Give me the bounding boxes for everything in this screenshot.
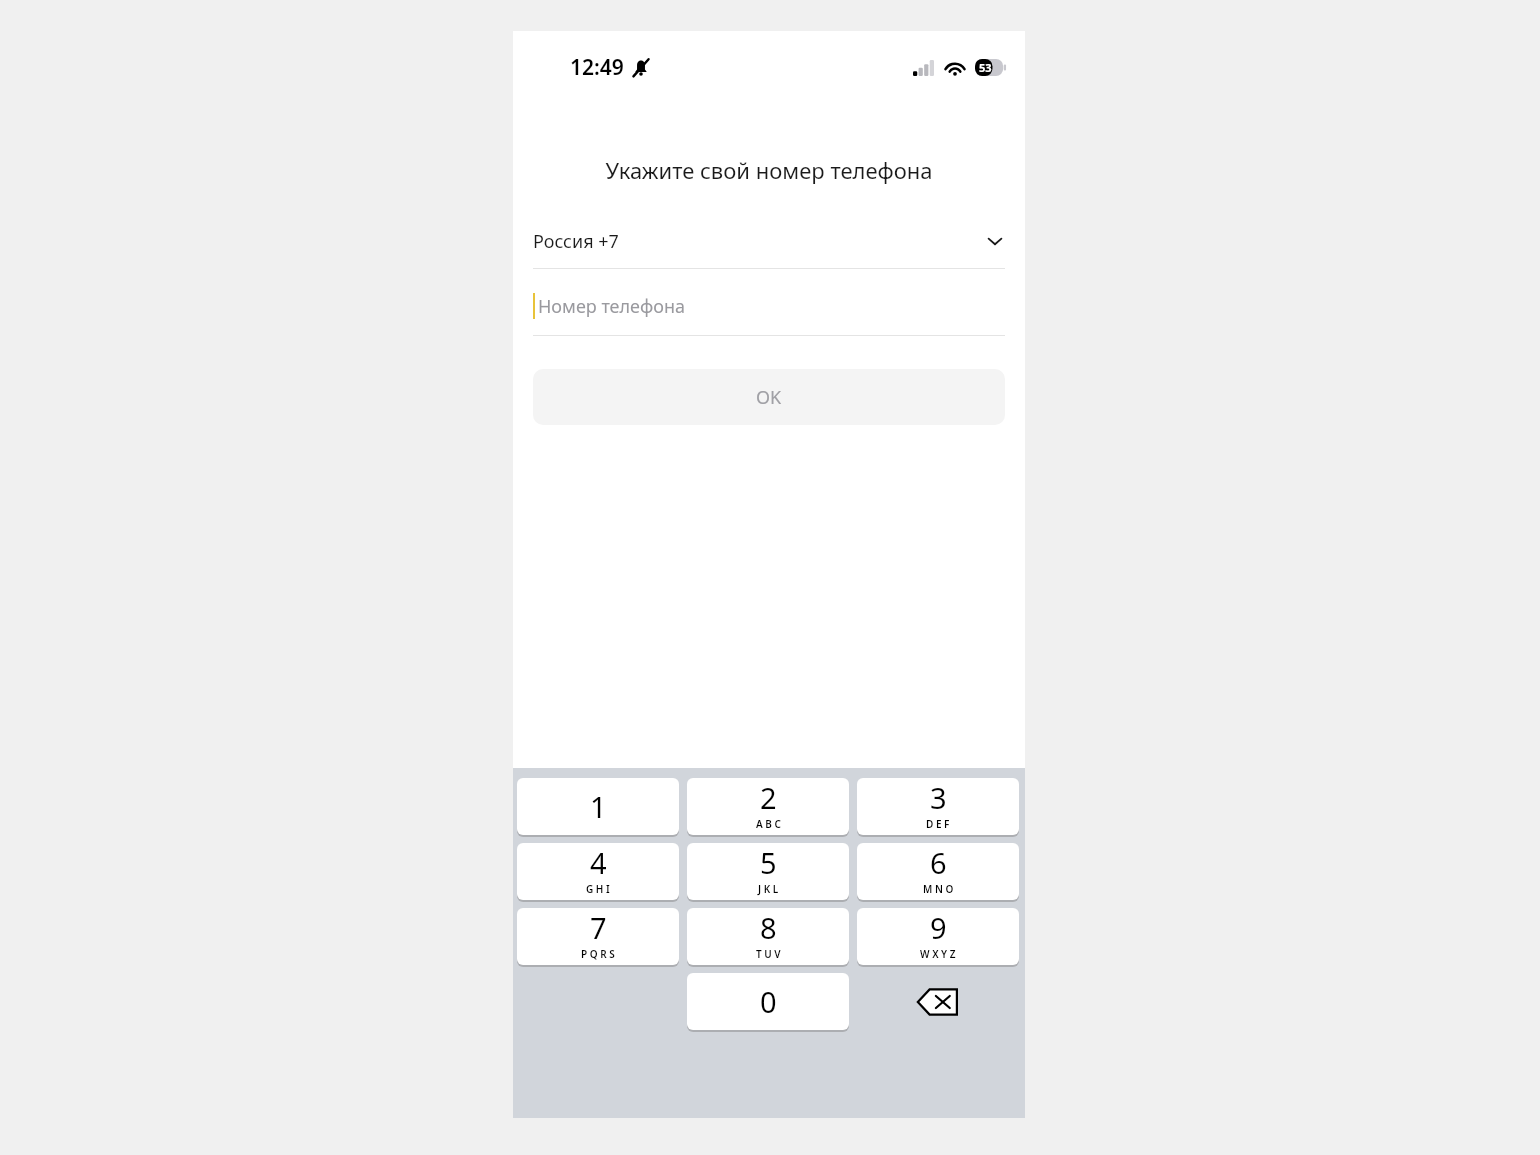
staticText: 12:49 bbox=[570, 53, 624, 82]
staticText: 3 bbox=[930, 778, 947, 817]
staticText: 8 bbox=[760, 908, 777, 947]
staticText: P Q R S bbox=[581, 947, 615, 961]
button[interactable]: 7 bbox=[517, 908, 679, 965]
staticText: 0 bbox=[760, 982, 777, 1021]
staticText: 2 bbox=[760, 778, 777, 817]
staticText: A B C bbox=[756, 817, 781, 831]
staticText: J K L bbox=[758, 882, 779, 896]
button[interactable]: 3 bbox=[857, 778, 1019, 835]
button[interactable]: 0 bbox=[687, 973, 849, 1030]
button[interactable]: 6 bbox=[857, 843, 1019, 900]
staticText: 4 bbox=[590, 843, 607, 882]
staticText: D E F bbox=[926, 817, 950, 831]
staticText: Россия +7 bbox=[533, 229, 619, 254]
button[interactable]: Россия +7 bbox=[533, 224, 1005, 258]
staticText: 5 bbox=[760, 843, 777, 882]
staticText: G H I bbox=[586, 882, 610, 896]
staticText: 53 bbox=[979, 60, 992, 75]
staticText: 1 bbox=[590, 787, 607, 826]
staticText: T U V bbox=[756, 947, 781, 961]
button[interactable]: Backspace bbox=[857, 973, 1019, 1030]
staticText: OK bbox=[756, 385, 782, 410]
staticText: 9 bbox=[930, 908, 947, 947]
staticText: 7 bbox=[590, 908, 607, 947]
button[interactable]: 8 bbox=[687, 908, 849, 965]
staticText: 6 bbox=[930, 843, 947, 882]
button[interactable]: 9 bbox=[857, 908, 1019, 965]
staticText: W X Y Z bbox=[920, 947, 956, 961]
staticText: M N O bbox=[923, 882, 954, 896]
button[interactable]: 4 bbox=[517, 843, 679, 900]
button[interactable]: 1 bbox=[517, 778, 679, 835]
button[interactable]: 2 bbox=[687, 778, 849, 835]
button[interactable]: 5 bbox=[687, 843, 849, 900]
staticText: Номер телефона bbox=[538, 294, 686, 319]
button[interactable]: OK bbox=[533, 369, 1005, 425]
button[interactable]: Номер телефона bbox=[533, 289, 1005, 323]
staticText: Укажите свой номер телефона bbox=[513, 155, 1025, 185]
